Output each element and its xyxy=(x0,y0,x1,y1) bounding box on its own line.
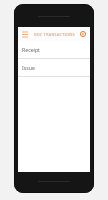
staticText: Receipt xyxy=(22,46,40,53)
button[interactable]: Account xyxy=(76,27,90,41)
staticText: Issue xyxy=(22,64,35,71)
button[interactable]: Issue xyxy=(18,59,90,76)
button[interactable]: Receipt xyxy=(18,41,90,58)
staticText: BDC TRANSACTIONS xyxy=(34,32,75,37)
button[interactable]: Open navigation menu xyxy=(18,27,32,41)
